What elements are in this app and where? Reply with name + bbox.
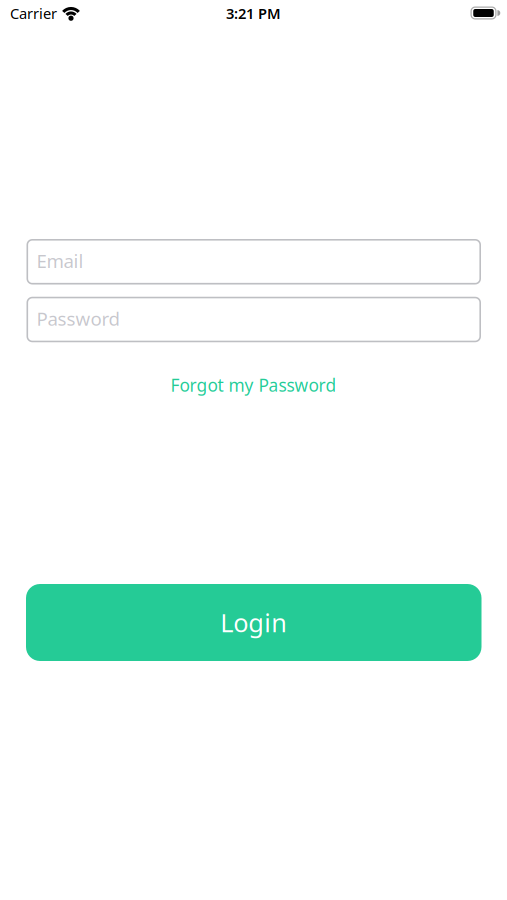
staticText: Email [36, 248, 83, 273]
staticText: Carrier [10, 3, 57, 23]
staticText: Login [220, 606, 287, 639]
textField[interactable]: Email [26, 239, 481, 284]
staticText: 3:21 PM [226, 3, 281, 23]
textField[interactable]: Password [26, 297, 481, 342]
button[interactable]: Login [26, 584, 481, 661]
staticText: Forgot my Password [170, 373, 336, 396]
button[interactable]: Forgot my Password [170, 373, 336, 396]
staticText: Password [36, 306, 119, 331]
